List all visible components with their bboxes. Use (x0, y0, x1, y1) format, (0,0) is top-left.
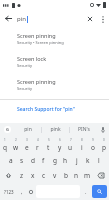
staticText: 4 (37, 138, 39, 142)
staticText: 9 (92, 138, 94, 142)
staticText: c (42, 171, 46, 180)
button[interactable]: c (38, 168, 49, 183)
button[interactable]: ?123 (0, 185, 17, 198)
button[interactable]: . (81, 185, 90, 198)
button[interactable]: k (82, 153, 93, 168)
staticText: Search Support for "pin" (17, 106, 75, 113)
staticText: e (25, 143, 29, 152)
button[interactable]: Back (0, 10, 17, 27)
button[interactable]: pink (42, 123, 69, 136)
button[interactable]: Backspace (93, 168, 109, 183)
staticText: ?123 (4, 189, 14, 195)
button[interactable]: 2 (10, 136, 21, 153)
button[interactable]: , (17, 185, 26, 198)
staticText: PIN's (78, 126, 90, 133)
staticText: Screen pinning (17, 78, 56, 85)
button[interactable]: m (82, 168, 93, 183)
staticText: 8 (81, 138, 83, 142)
button[interactable]: Screen lock (0, 50, 109, 73)
staticText: k (86, 156, 90, 165)
staticText: m (84, 171, 91, 180)
staticText: 3 (26, 138, 28, 142)
staticText: 0 (103, 138, 105, 142)
staticText: 2 (15, 138, 17, 142)
staticText: pink (50, 126, 61, 133)
button[interactable]: z (16, 168, 27, 183)
staticText: . (85, 188, 87, 195)
staticText: g (53, 156, 57, 165)
button[interactable]: n (71, 168, 82, 183)
staticText: Screen pinning (17, 32, 56, 39)
button[interactable]: g (49, 153, 60, 168)
staticText: Screen lock (17, 55, 47, 62)
staticText: , (21, 188, 23, 195)
staticText: f (42, 156, 45, 165)
staticText: p (102, 143, 106, 152)
staticText: t (47, 143, 50, 152)
button[interactable]: Google (0, 123, 14, 136)
staticText: G (6, 127, 9, 132)
staticText: j (76, 156, 78, 165)
button[interactable]: Screen pinning (0, 73, 109, 96)
button[interactable]: j (71, 153, 82, 168)
staticText: x (31, 171, 35, 180)
button[interactable]: b (60, 168, 71, 183)
button[interactable]: d (27, 153, 38, 168)
staticText: Security • Screen pinning (17, 40, 64, 45)
button[interactable]: 5 (43, 136, 54, 153)
staticText: n (74, 171, 79, 180)
staticText: 6 (59, 138, 61, 142)
staticText: z (20, 171, 24, 180)
staticText: d (31, 156, 35, 165)
button[interactable]: Screen pinning (0, 27, 109, 50)
staticText: 5 (48, 138, 50, 142)
staticText: w (13, 143, 19, 152)
button[interactable]: 6 (54, 136, 65, 153)
button[interactable]: f (38, 153, 49, 168)
button[interactable]: x (27, 168, 38, 183)
staticText: pin (17, 15, 26, 23)
staticText: Security (17, 86, 33, 91)
button[interactable]: a (5, 153, 16, 168)
staticText: b (64, 171, 68, 180)
button[interactable]: pin (14, 123, 41, 136)
button[interactable]: v (49, 168, 60, 183)
button[interactable]: 3 (21, 136, 32, 153)
button[interactable]: Shift (0, 168, 16, 183)
button[interactable]: 7 (65, 136, 76, 153)
button[interactable]: 4 (32, 136, 43, 153)
staticText: 1 (4, 138, 6, 142)
button[interactable]: h (60, 153, 71, 168)
button[interactable]: l (93, 153, 104, 168)
button[interactable]: 8 (76, 136, 87, 153)
button[interactable]: Search (92, 185, 107, 198)
staticText: a (9, 156, 13, 165)
staticText: l (98, 156, 100, 165)
staticText: i (81, 143, 83, 152)
button[interactable]: Search Support for "pin" (0, 100, 109, 119)
staticText: Security (17, 63, 33, 68)
staticText: pin (24, 126, 32, 133)
staticText: o (91, 143, 95, 152)
staticText: q (3, 143, 7, 152)
button[interactable]: More options (97, 13, 109, 25)
button[interactable]: Voice input (97, 123, 109, 136)
button[interactable]: Emoji (26, 185, 35, 198)
button[interactable]: 1 (0, 136, 10, 153)
button[interactable]: s (16, 153, 27, 168)
staticText: h (63, 156, 68, 165)
button[interactable]: 0 (98, 136, 109, 153)
staticText: 7 (70, 138, 72, 142)
button[interactable]: 9 (87, 136, 98, 153)
staticText: s (20, 156, 24, 165)
staticText: y (58, 143, 62, 152)
staticText: u (68, 143, 73, 152)
button[interactable]: Clear (83, 12, 97, 26)
staticText: v (53, 171, 57, 180)
staticText: r (36, 143, 39, 152)
button[interactable]: PIN's (70, 123, 97, 136)
